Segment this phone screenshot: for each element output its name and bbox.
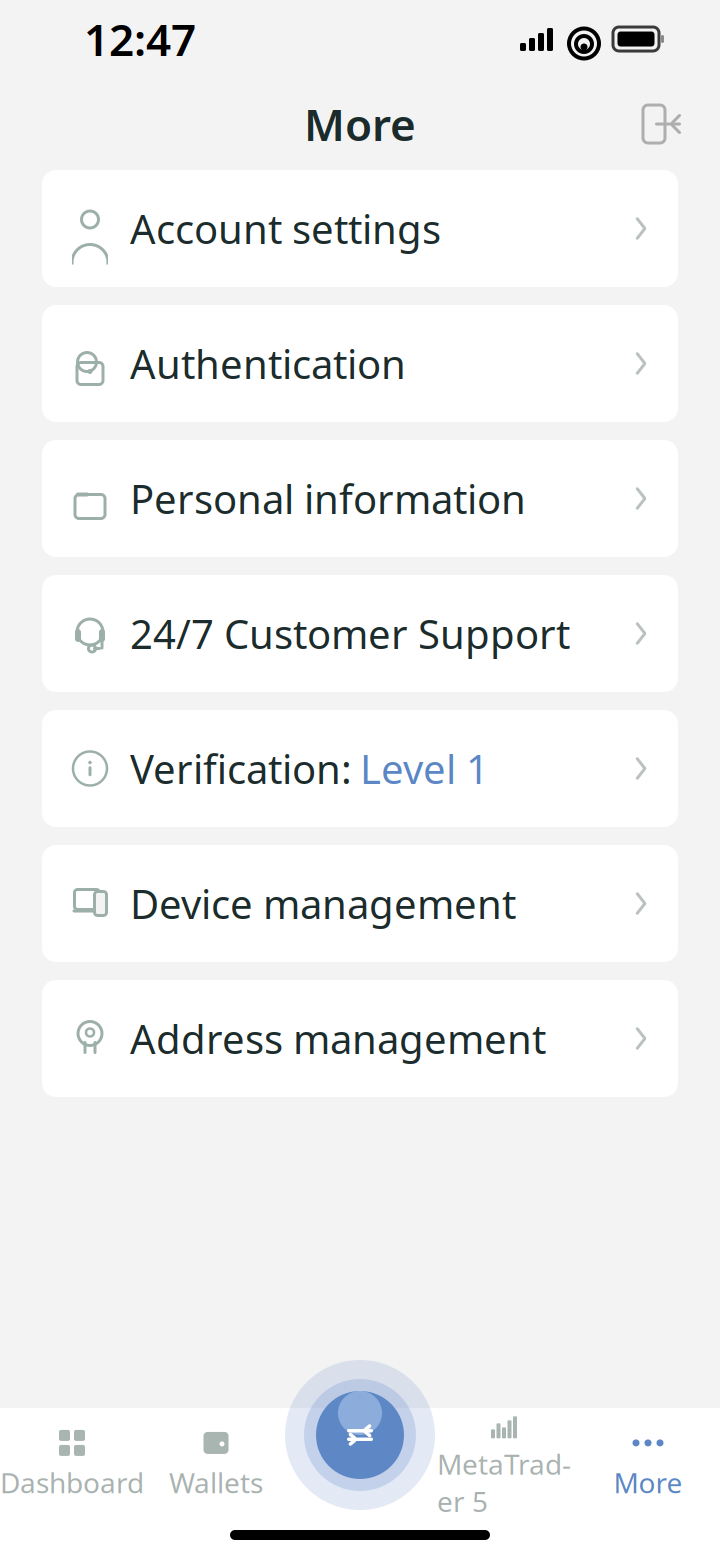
button[interactable]: Verification: <box>42 710 678 827</box>
staticText: Dashboard <box>0 1464 144 1501</box>
button[interactable]: Transfer <box>314 1389 406 1481</box>
button[interactable]: Dashboard <box>0 1422 144 1508</box>
button[interactable]: More <box>576 1422 720 1508</box>
button[interactable]: Authentication <box>42 305 678 422</box>
button[interactable]: Wallets <box>144 1422 288 1508</box>
staticText: Verification: <box>130 742 352 795</box>
staticText: Level 1 <box>360 742 489 795</box>
staticText: Account settings <box>130 202 441 255</box>
button[interactable]: Address management <box>42 980 678 1097</box>
staticText: MetaTrader 5 <box>437 1445 571 1520</box>
button[interactable]: Log out <box>632 94 692 154</box>
staticText: 24/7 Customer Support <box>130 607 570 660</box>
button[interactable]: Device management <box>42 845 678 962</box>
staticText: Authentication <box>130 337 406 390</box>
staticText: More <box>613 1464 682 1501</box>
staticText: Wallets <box>169 1464 263 1501</box>
button[interactable]: Account settings <box>42 170 678 287</box>
staticText: 12:47 <box>84 10 196 68</box>
button[interactable]: MetaTrader 5 <box>432 1422 576 1508</box>
staticText: Address management <box>130 1012 546 1065</box>
button[interactable]: Personal information <box>42 440 678 557</box>
button[interactable]: 24/7 Customer Support <box>42 575 678 692</box>
staticText: Device management <box>130 877 516 930</box>
staticText: Personal information <box>130 472 526 525</box>
staticText: More <box>304 95 416 153</box>
